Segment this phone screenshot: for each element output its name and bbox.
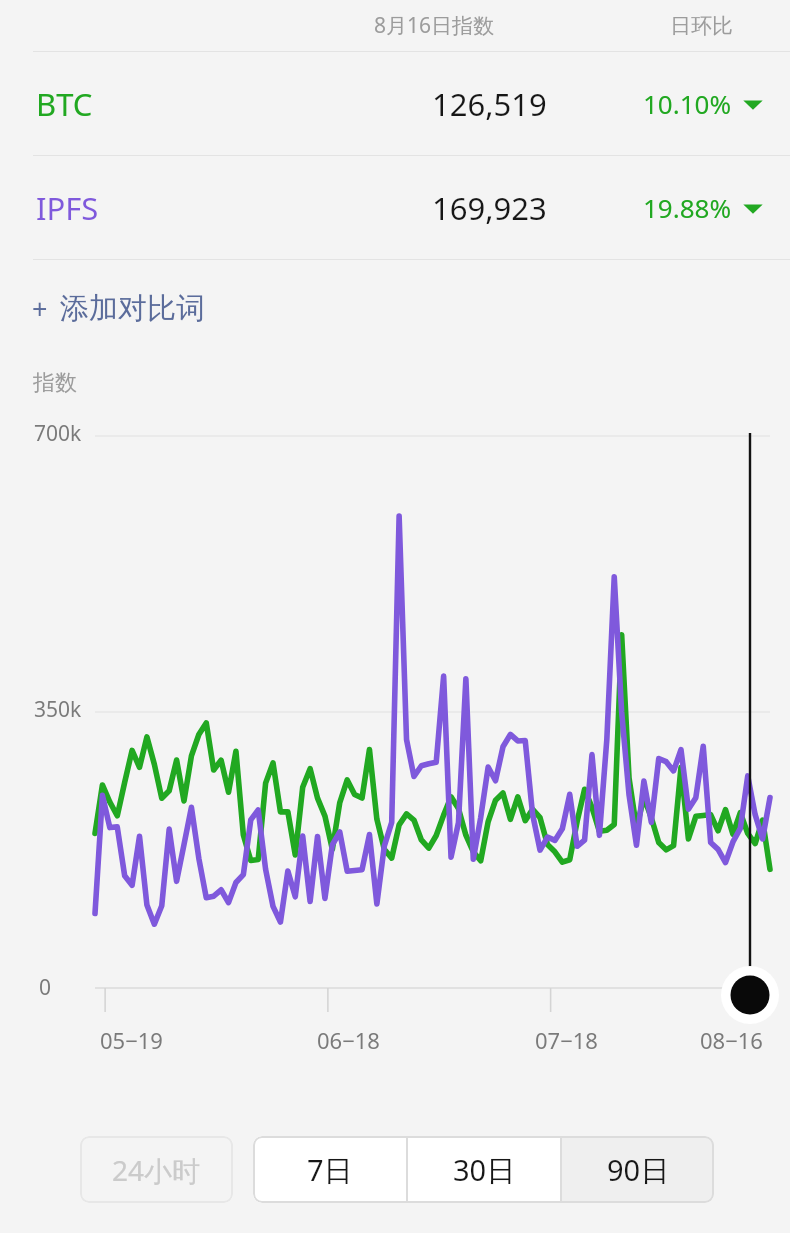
staticText: 350k: [34, 695, 82, 724]
staticText: 7日: [307, 1150, 353, 1190]
staticText: BTC: [36, 83, 93, 125]
staticText: 日环比: [670, 13, 733, 39]
staticText: 700k: [34, 419, 82, 448]
staticText: 10.10%: [643, 86, 732, 121]
staticText: 07−18: [535, 1025, 598, 1055]
button[interactable]: 7日: [253, 1136, 406, 1203]
staticText: +: [32, 290, 48, 327]
button[interactable]: 30日: [408, 1136, 560, 1203]
staticText: 24小时: [112, 1151, 201, 1189]
staticText: 08−16: [700, 1025, 763, 1055]
staticText: 30日: [453, 1150, 516, 1190]
button[interactable]: +: [32, 290, 205, 327]
staticText: 19.88%: [643, 190, 732, 225]
button[interactable]: 90日: [562, 1136, 714, 1203]
staticText: 90日: [607, 1150, 670, 1190]
staticText: 126,519: [432, 83, 547, 125]
staticText: 指数: [33, 369, 77, 397]
staticText: 06−18: [317, 1025, 380, 1055]
button[interactable]: BTC: [0, 52, 790, 155]
staticText: 05−19: [100, 1025, 163, 1055]
staticText: IPFS: [36, 187, 99, 229]
staticText: 169,923: [432, 187, 547, 229]
staticText: 添加对比词: [60, 290, 205, 327]
button[interactable]: 24小时: [80, 1136, 233, 1203]
staticText: 0: [39, 973, 52, 1002]
button[interactable]: IPFS: [0, 156, 790, 259]
staticText: 8月16日指数: [374, 11, 495, 40]
